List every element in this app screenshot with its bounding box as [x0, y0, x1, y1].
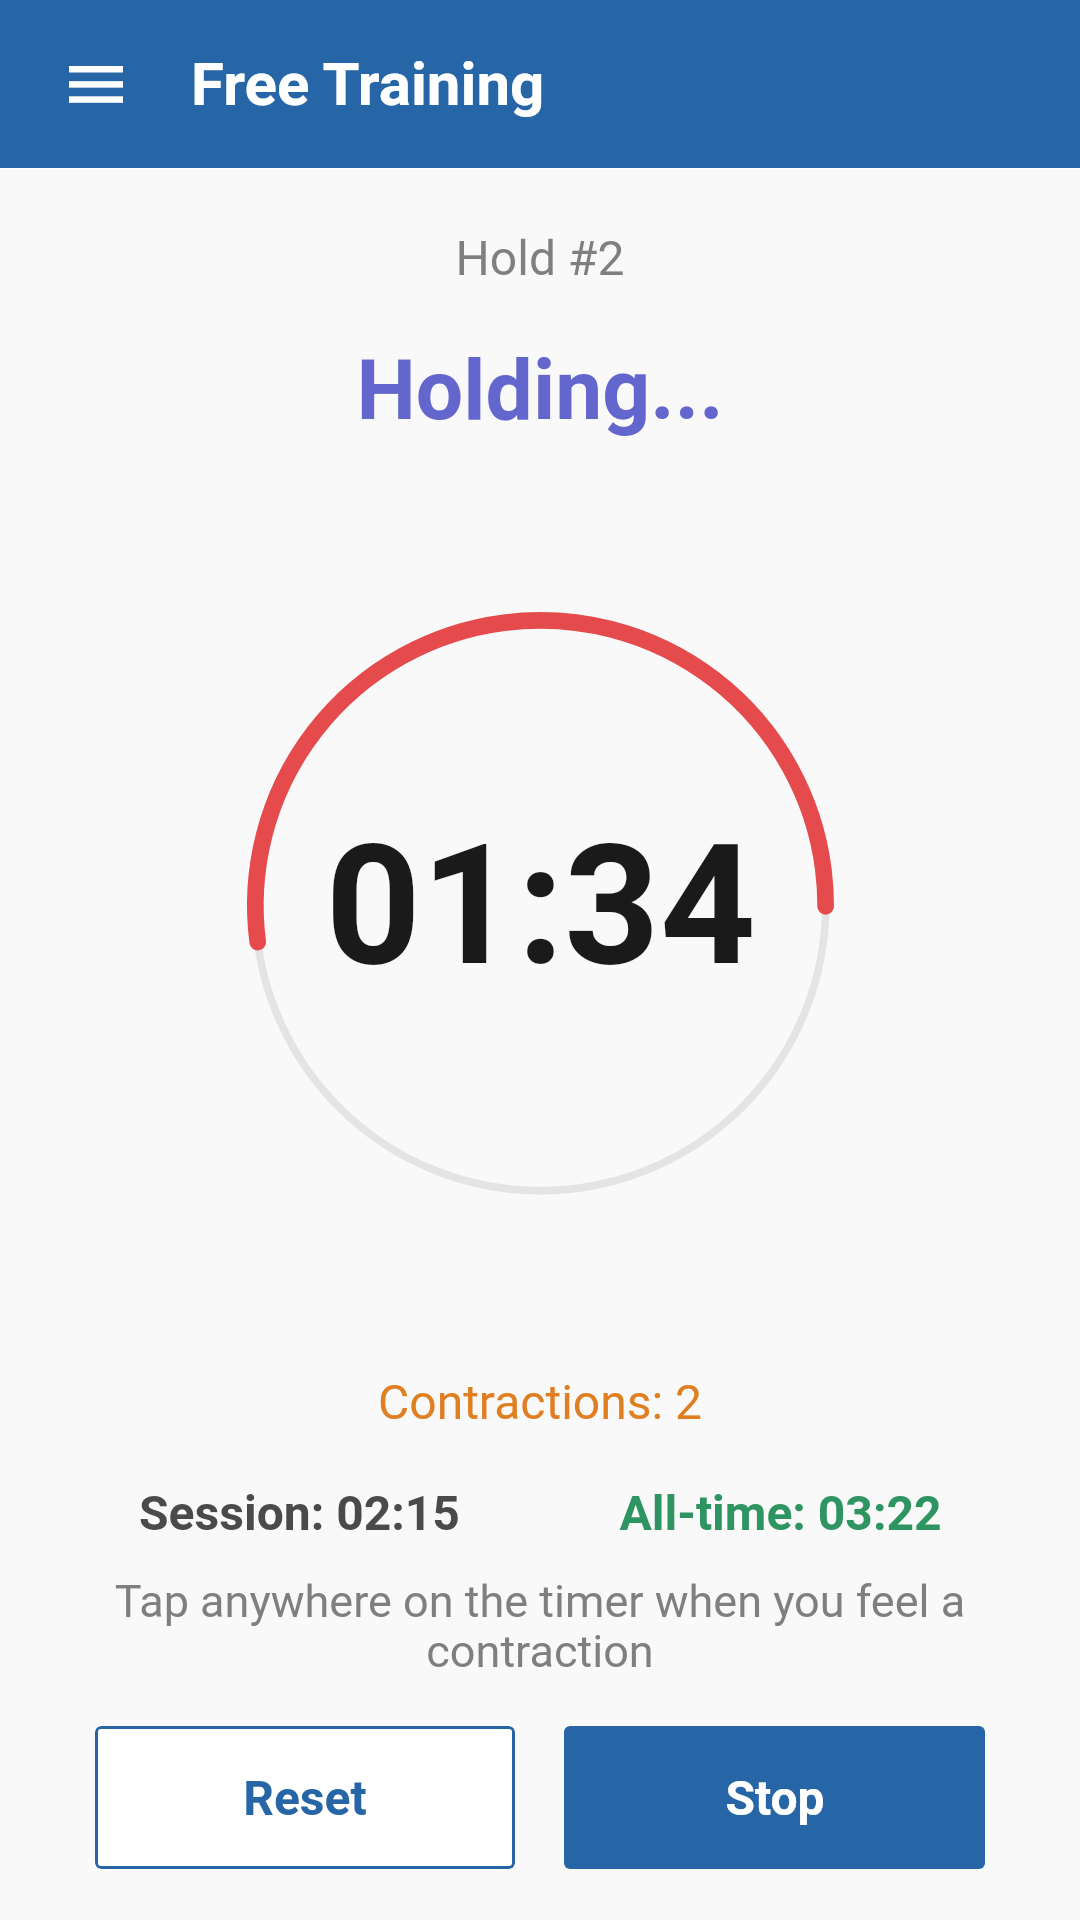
staticText: Contractions: 2: [0, 1374, 1080, 1430]
staticText: Session: 02:15: [139, 1485, 460, 1541]
button[interactable]: Reset: [95, 1726, 515, 1869]
staticText: All-time: 03:22: [619, 1485, 942, 1541]
staticText: Free Training: [191, 49, 545, 119]
staticText: Tap anywhere on the timer when you feel …: [55, 1575, 1025, 1678]
staticText: Stop: [725, 1770, 825, 1826]
staticText: Hold #2: [0, 230, 1080, 286]
staticText: Reset: [243, 1770, 367, 1826]
button[interactable]: Stop: [564, 1726, 985, 1869]
staticText: Holding...: [0, 341, 1080, 439]
button[interactable]: Timer, tap when you feel a contraction: [247, 612, 834, 1199]
button[interactable]: Open navigation menu: [48, 36, 144, 132]
staticText: 01:34: [325, 808, 756, 1004]
